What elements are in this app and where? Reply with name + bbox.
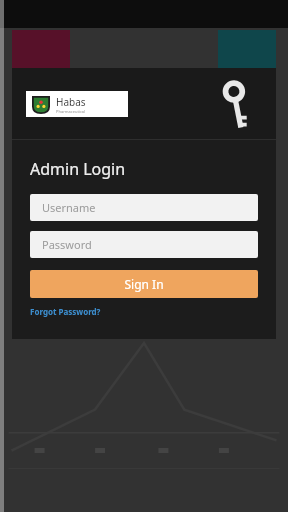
button[interactable]: Forgot Password? [30, 306, 101, 317]
staticText: Admin Login [30, 158, 126, 180]
button[interactable]: Password [30, 231, 258, 258]
staticText: Habas [56, 95, 86, 109]
staticText: Username [42, 200, 96, 215]
staticText: Forgot Password? [30, 306, 101, 317]
other: Key [216, 82, 260, 126]
staticText: Password [42, 237, 92, 252]
button[interactable]: Sign In [30, 270, 258, 298]
button[interactable]: Username [30, 194, 258, 221]
button[interactable]: Habas logo [26, 91, 128, 117]
staticText: Sign In [124, 276, 164, 292]
staticText: Pharmaceutical [56, 109, 86, 114]
